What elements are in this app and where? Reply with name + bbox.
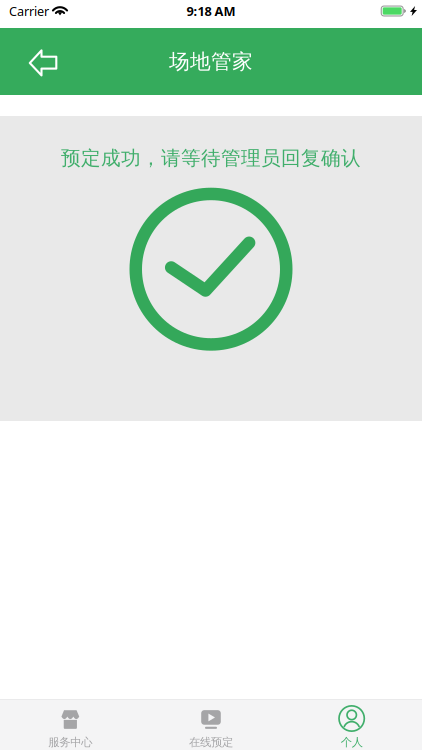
staticText: 9:18 AM — [186, 2, 235, 20]
staticText: 预定成功，请等待管理员回复确认 — [61, 146, 361, 171]
button[interactable]: 个人 — [281, 700, 422, 750]
staticText: 服务中心 — [48, 735, 92, 749]
button[interactable]: 服务中心 — [0, 700, 141, 750]
staticText: Carrier — [9, 2, 49, 20]
button[interactable]: 在线预定 — [141, 700, 281, 750]
staticText: 在线预定 — [189, 735, 233, 749]
staticText: 个人 — [341, 735, 363, 749]
staticText: 场地管家 — [169, 48, 253, 74]
button[interactable]: Back — [14, 26, 72, 96]
